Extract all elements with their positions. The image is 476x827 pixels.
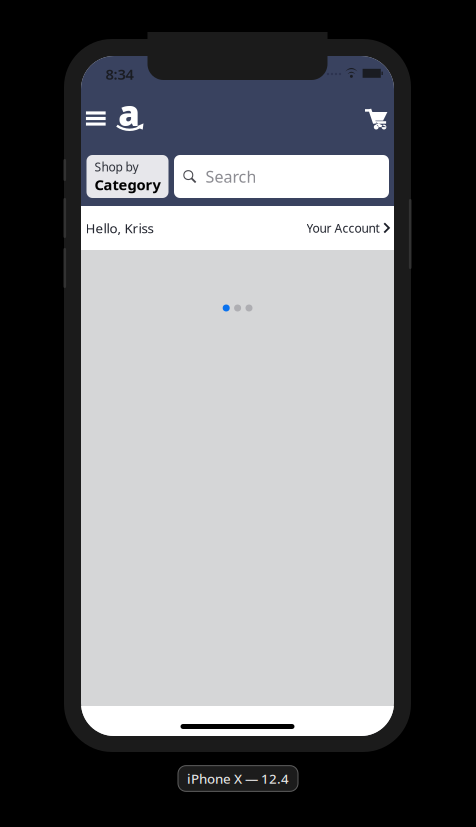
staticText: iPhone X — 12.4 bbox=[187, 770, 289, 787]
staticText: 8:34 bbox=[105, 64, 133, 84]
button[interactable]: Shop by bbox=[86, 155, 168, 198]
staticText: Search bbox=[205, 166, 256, 187]
button[interactable]: Open menu bbox=[79, 101, 113, 135]
staticText: Hello, Kriss bbox=[85, 219, 153, 237]
staticText: Your Account bbox=[307, 220, 380, 236]
button[interactable]: Your Account bbox=[298, 211, 395, 245]
button[interactable]: Shopping cart bbox=[359, 102, 393, 136]
staticText: a bbox=[118, 89, 140, 135]
staticText: Shop by bbox=[94, 159, 138, 175]
button[interactable]: Search bbox=[174, 155, 389, 198]
staticText: Category bbox=[94, 175, 160, 194]
button[interactable]: Amazon bbox=[114, 100, 148, 136]
